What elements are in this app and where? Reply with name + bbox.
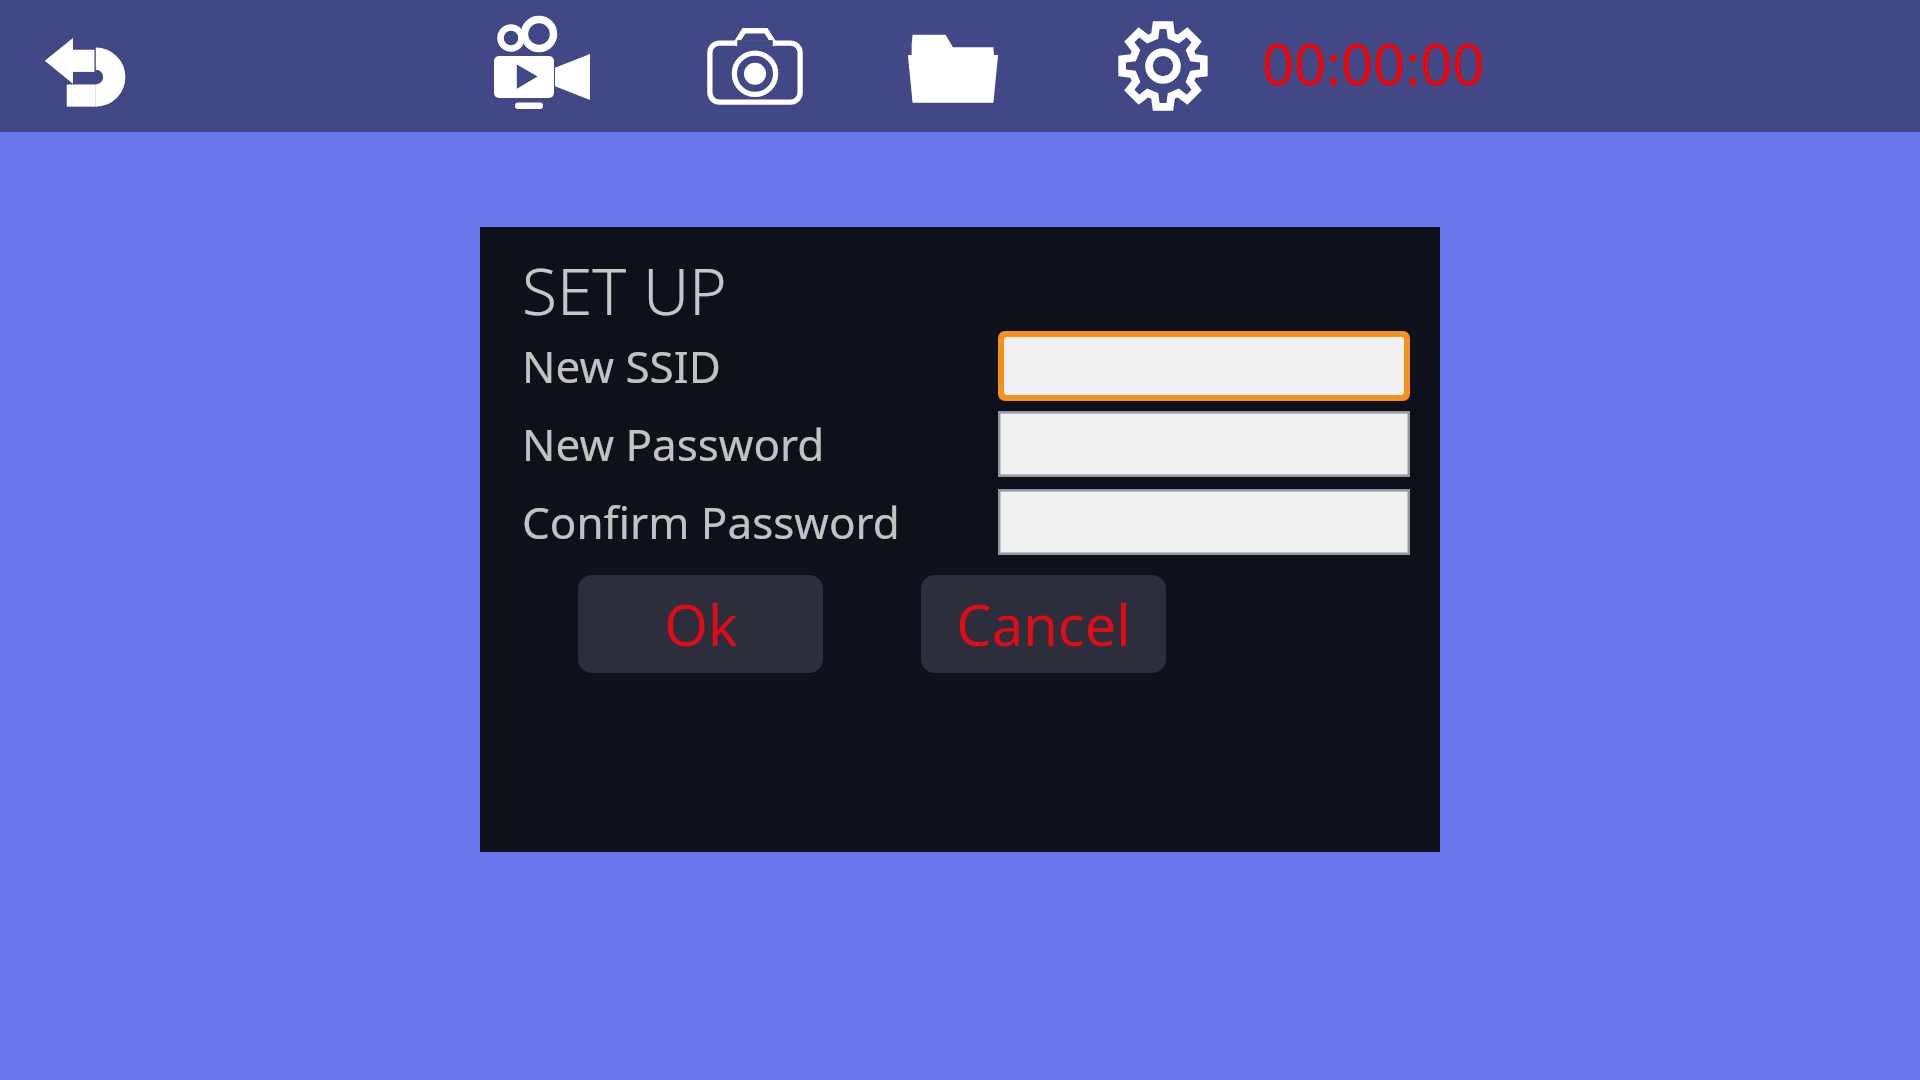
button[interactable]: Files	[894, 0, 1012, 132]
staticText: Ok	[664, 586, 738, 662]
staticText: New Password	[522, 414, 825, 474]
button[interactable]: Settings	[1104, 0, 1222, 132]
button[interactable]: Record video	[482, 0, 600, 132]
button[interactable]: New SSID	[998, 331, 1410, 401]
button[interactable]: Ok	[578, 575, 823, 673]
staticText: Confirm Password	[522, 492, 900, 552]
button[interactable]: Cancel	[921, 575, 1166, 673]
button[interactable]: Confirm Password	[998, 489, 1410, 555]
staticText: Cancel	[956, 586, 1131, 662]
staticText: SET UP	[522, 247, 727, 334]
button[interactable]: Back	[26, 0, 148, 132]
staticText: New SSID	[522, 336, 721, 396]
button[interactable]: Take photo	[696, 0, 814, 132]
staticText: 00:00:00	[1262, 25, 1485, 101]
button[interactable]: New Password	[998, 411, 1410, 477]
